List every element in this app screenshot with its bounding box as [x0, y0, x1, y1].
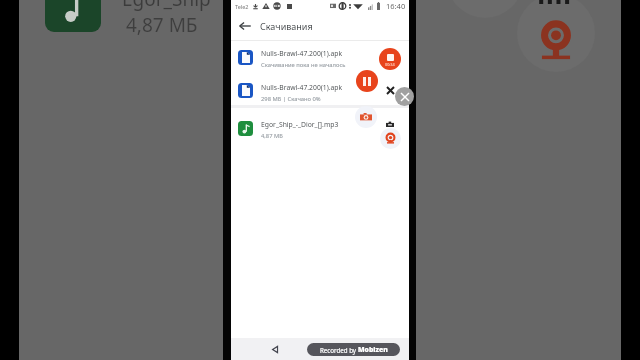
staticText: Tele2 — [235, 3, 249, 10]
staticText: Egor_Ship — [122, 0, 211, 12]
staticText: 298 МБ | Скачано 0% — [261, 95, 321, 103]
staticText: 00:34 — [385, 62, 395, 67]
staticText: Nulls-Brawl-47.200(1).apk — [261, 49, 343, 58]
staticText: Egor_Ship_-_Dior_[].mp3 — [261, 120, 339, 129]
staticText: 16:40 — [386, 1, 406, 11]
button[interactable]: Nulls-Brawl-47.200(1).apk — [231, 40, 409, 74]
button[interactable]: Камера — [380, 128, 401, 149]
staticText: Скачивание пока не началось — [261, 61, 346, 69]
button[interactable]: Nulls-Brawl-47.200(1).apk — [231, 74, 409, 107]
staticText: Скачивания — [260, 20, 313, 32]
staticText: 4,87 МБ — [126, 12, 198, 38]
button[interactable]: Back — [267, 341, 283, 357]
button[interactable]: Назад — [234, 15, 256, 37]
button[interactable]: Снимок экрана — [355, 106, 377, 128]
staticText: Nulls-Brawl-47.200(1).apk — [261, 83, 343, 92]
staticText: Mobizen — [358, 345, 388, 354]
button[interactable]: Закрыть — [383, 83, 397, 97]
button[interactable]: Пауза — [356, 70, 378, 92]
button[interactable]: Egor_Ship_-_Dior_[].mp3 — [231, 111, 409, 145]
button[interactable]: Отмена — [395, 87, 414, 106]
staticText: 4,87 МБ — [261, 132, 283, 140]
staticText: Recorded by — [320, 346, 358, 354]
button[interactable]: Recorded by Mobizen — [307, 343, 400, 356]
button[interactable]: Стоп — [379, 48, 401, 70]
